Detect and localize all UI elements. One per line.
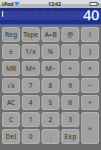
button[interactable]: 7 [22, 78, 40, 93]
button[interactable]: Exp [61, 129, 79, 144]
staticText: i [89, 30, 91, 39]
staticText: 9 [68, 81, 72, 90]
staticText: AC [7, 98, 15, 107]
button[interactable]: 4 [22, 95, 40, 110]
staticText: @ [67, 30, 73, 39]
staticText: 0 [29, 132, 33, 141]
button[interactable]: 2 [42, 112, 59, 127]
button[interactable]: 0 [22, 129, 40, 144]
staticText: C [9, 115, 13, 124]
staticText: 5 [48, 98, 52, 107]
button[interactable]: Tape [22, 27, 40, 42]
staticText: = [88, 124, 92, 132]
staticText: 1 [29, 115, 33, 124]
button[interactable]: 9 [61, 78, 79, 93]
staticText: ( [69, 47, 71, 56]
staticText: Tape [23, 30, 38, 39]
staticText: ± [9, 47, 13, 56]
staticText: 3 [68, 115, 72, 124]
button[interactable]: 1 [22, 112, 40, 127]
staticText: ) [89, 47, 91, 56]
staticText: iPod [2, 0, 13, 8]
button[interactable]: C [2, 112, 20, 127]
button[interactable]: % [42, 44, 59, 59]
staticText: ÷ [68, 64, 72, 73]
button[interactable]: Del [2, 129, 20, 144]
staticText: 7 [29, 81, 33, 90]
button[interactable]: @ [61, 27, 79, 42]
button[interactable]: A=B [42, 27, 59, 42]
button[interactable]: 8 [42, 78, 59, 93]
button[interactable]: × [81, 61, 99, 76]
button[interactable]: 3 [61, 112, 79, 127]
staticText: MR [6, 64, 16, 73]
staticText: 40 [83, 5, 99, 24]
button[interactable]: ( [61, 44, 79, 59]
button[interactable]: √x [2, 78, 20, 93]
staticText: M+ [26, 64, 36, 73]
staticText: 4 [29, 98, 33, 107]
staticText: M− [45, 64, 55, 73]
button[interactable]: + [81, 95, 99, 110]
button[interactable]: ) [81, 44, 99, 59]
button[interactable]: MR [2, 61, 20, 76]
button[interactable]: ± [2, 44, 20, 59]
button[interactable]: AC [2, 95, 20, 110]
staticText: 2 [48, 115, 52, 124]
staticText: 12:42 [48, 0, 61, 8]
staticText: − [88, 81, 92, 90]
button[interactable]: 6 [61, 95, 79, 110]
staticText: 8 [48, 81, 52, 90]
button[interactable]: i [81, 27, 99, 42]
staticText: 1/x [25, 47, 36, 56]
staticText: √x [7, 81, 15, 90]
staticText: . [49, 132, 51, 141]
staticText: Del [5, 132, 16, 141]
button[interactable]: Reg [2, 27, 20, 42]
button[interactable]: 5 [42, 95, 59, 110]
staticText: A=B [44, 30, 56, 39]
staticText: × [88, 64, 92, 73]
button[interactable]: = [81, 112, 99, 144]
button[interactable]: M+ [22, 61, 40, 76]
button[interactable]: ÷ [61, 61, 79, 76]
staticText: % [47, 47, 53, 56]
staticText: 6 [68, 98, 72, 107]
staticText: Exp [64, 132, 76, 141]
staticText: + [88, 98, 92, 107]
button[interactable]: 1/x [22, 44, 40, 59]
staticText: Reg [5, 30, 17, 39]
button[interactable]: . [42, 129, 59, 144]
button[interactable]: M− [42, 61, 59, 76]
button[interactable]: − [81, 78, 99, 93]
